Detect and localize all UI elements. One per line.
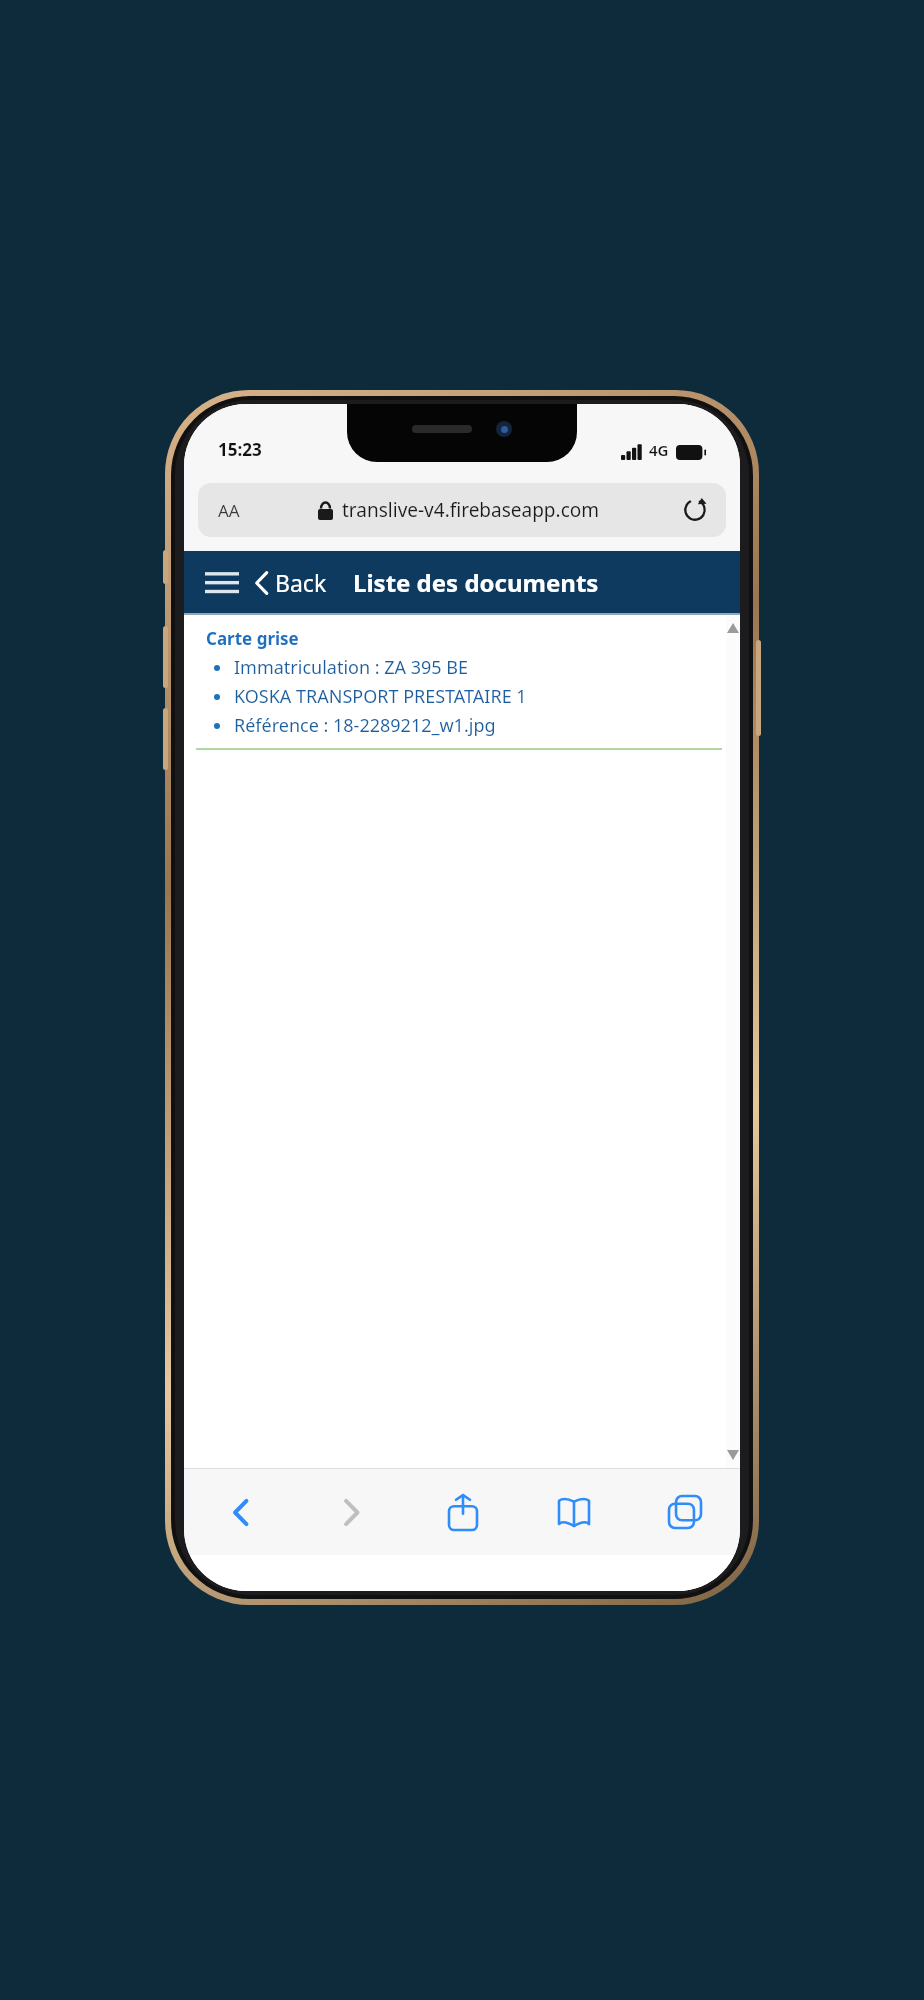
button[interactable]: Back xyxy=(250,563,331,602)
button[interactable]: AA xyxy=(198,483,726,537)
staticText: AA xyxy=(218,499,240,522)
staticText: KOSKA TRANSPORT PRESTATAIRE 1 xyxy=(234,684,527,709)
staticText: 15:23 xyxy=(218,438,262,461)
button[interactable]: Reload xyxy=(678,493,712,527)
staticText: Back xyxy=(275,567,327,598)
staticText: 4G xyxy=(649,440,669,460)
staticText: Liste des documents xyxy=(353,566,599,599)
staticText: Immatriculation : ZA 395 BE xyxy=(234,655,469,680)
button[interactable]: Carte grise xyxy=(184,615,740,748)
button[interactable]: Forward xyxy=(296,1469,407,1555)
button[interactable]: Share xyxy=(407,1469,518,1555)
button[interactable]: Tabs xyxy=(629,1469,740,1555)
staticText: translive-v4.firebaseapp.com xyxy=(342,497,600,523)
button[interactable]: Back xyxy=(184,1469,296,1555)
button[interactable]: Menu xyxy=(200,560,244,604)
button[interactable]: Bookmarks xyxy=(518,1469,629,1555)
staticText: Carte grise xyxy=(206,627,299,650)
staticText: Référence : 18-2289212_w1.jpg xyxy=(234,713,496,738)
